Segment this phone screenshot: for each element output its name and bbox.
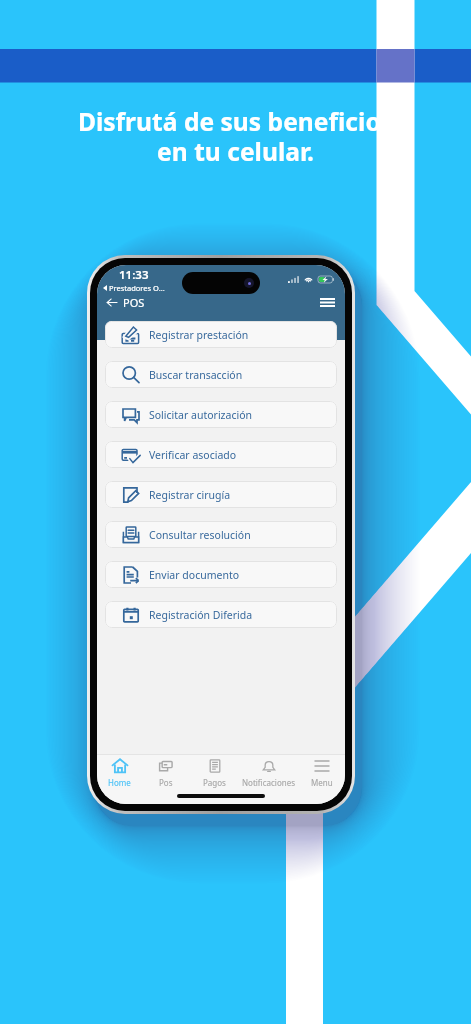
staticText: Buscar transacción (149, 368, 243, 382)
staticText: Notificaciones (242, 777, 296, 788)
staticText: Enviar documento (149, 568, 240, 582)
button[interactable]: Registrar prestación (105, 321, 337, 348)
staticText: Prestadores O... (109, 283, 165, 293)
staticText: Pos (159, 777, 173, 788)
button[interactable]: Menu (317, 295, 338, 310)
button[interactable]: Menu (311, 758, 333, 788)
button[interactable]: Registración Diferida (105, 601, 337, 628)
button[interactable]: Registrar cirugía (105, 481, 337, 508)
button[interactable]: Solicitar autorización (105, 401, 337, 428)
button[interactable]: Enviar documento (105, 561, 337, 588)
button[interactable]: Pos (158, 758, 174, 788)
staticText: Pagos (203, 777, 226, 788)
staticText: Registración Diferida (149, 608, 253, 622)
button[interactable]: Back (103, 295, 148, 310)
staticText: Registrar cirugía (149, 488, 231, 502)
staticText: Registrar prestación (149, 328, 249, 342)
staticText: Consultar resolución (149, 528, 251, 542)
staticText: en tu celular. (0, 135, 471, 169)
staticText: Home (108, 777, 131, 788)
button[interactable]: Consultar resolución (105, 521, 337, 548)
button[interactable]: Notificaciones (242, 758, 296, 788)
staticText: Verificar asociado (149, 448, 237, 462)
button[interactable]: Pagos (203, 758, 226, 788)
staticText: Disfrutá de sus beneficios (0, 105, 471, 139)
other: Back (106, 297, 118, 308)
button[interactable]: Verificar asociado (105, 441, 337, 468)
button[interactable]: Buscar transacción (105, 361, 337, 388)
other: Menu (320, 298, 335, 307)
staticText: POS (123, 295, 145, 310)
staticText: 11:33 (119, 267, 149, 283)
staticText: Solicitar autorización (149, 408, 253, 422)
button[interactable]: Home (108, 758, 131, 788)
staticText: Menu (311, 777, 333, 788)
